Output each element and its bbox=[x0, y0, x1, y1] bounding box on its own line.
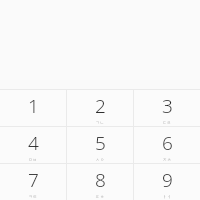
button[interactable]: 3 bbox=[134, 90, 200, 126]
button[interactable]: 5 bbox=[67, 127, 133, 163]
button[interactable]: 4 bbox=[0, 127, 66, 163]
staticText: 3 bbox=[162, 93, 173, 119]
button[interactable]: 1 bbox=[0, 90, 66, 126]
staticText: ㅍㅎ bbox=[95, 194, 105, 199]
staticText: ㄱㄴ bbox=[95, 120, 105, 125]
staticText: 5 bbox=[95, 130, 106, 156]
staticText: 1 bbox=[28, 93, 39, 119]
button[interactable]: 7 bbox=[0, 164, 66, 200]
button[interactable]: 8 bbox=[67, 164, 133, 200]
button[interactable]: 2 bbox=[67, 90, 133, 126]
staticText: 8 bbox=[95, 167, 106, 193]
button[interactable]: 6 bbox=[134, 127, 200, 163]
staticText: ㅋㅌ bbox=[28, 194, 38, 199]
staticText: 9 bbox=[162, 167, 173, 193]
staticText: 6 bbox=[162, 130, 173, 156]
staticText: ㅁㅂ bbox=[28, 157, 38, 162]
staticText: 2 bbox=[95, 93, 106, 119]
staticText: ㅅㅇ bbox=[95, 157, 105, 162]
staticText: ㅈㅊ bbox=[162, 157, 172, 162]
staticText: ㄷㄹ bbox=[162, 120, 172, 125]
staticText: 7 bbox=[28, 167, 39, 193]
staticText: 4 bbox=[28, 130, 39, 156]
staticText: ㅏㅓ bbox=[162, 194, 172, 199]
button[interactable]: 9 bbox=[134, 164, 200, 200]
